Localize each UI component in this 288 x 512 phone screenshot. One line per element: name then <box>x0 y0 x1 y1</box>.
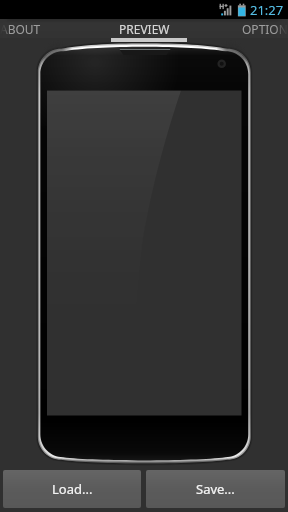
staticText: ABOUT <box>0 21 41 37</box>
button[interactable]: PREVIEW <box>101 19 187 38</box>
button[interactable]: ABOUT <box>0 19 44 38</box>
staticText: 21:27 <box>250 1 284 19</box>
button[interactable]: OPTIONS <box>242 19 288 38</box>
staticText: Load... <box>52 480 93 498</box>
staticText: PREVIEW <box>119 21 170 37</box>
button[interactable]: Load... <box>3 470 141 508</box>
staticText: Save... <box>196 480 235 498</box>
button[interactable]: Save... <box>146 470 285 508</box>
staticText: OPTIONS <box>242 21 288 37</box>
